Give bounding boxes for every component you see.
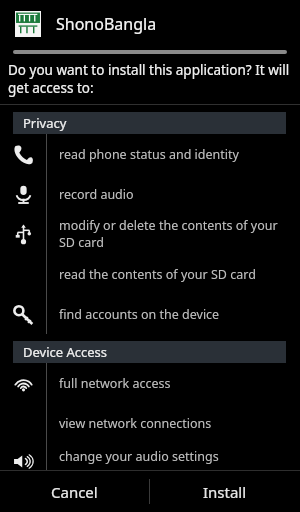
staticText: Device Access: [23, 343, 108, 361]
other: KEY: [13, 304, 34, 325]
button[interactable]: MIC: [0, 174, 300, 214]
staticText: modify or delete the contents of your SD…: [59, 217, 294, 251]
staticText: record audio: [59, 186, 134, 203]
other: PHONE: [13, 144, 34, 165]
staticText: read the contents of your SD card: [59, 266, 256, 283]
staticText: read phone status and identity: [59, 146, 239, 163]
button[interactable]: SPEAKER: [0, 443, 300, 470]
staticText: change your audio settings: [59, 448, 219, 465]
staticText: full network access: [59, 375, 171, 392]
staticText: find accounts on the device: [59, 306, 220, 323]
staticText: ShonoBangla: [56, 13, 157, 35]
other: USB: [13, 224, 34, 245]
staticText: view network connections: [59, 415, 212, 432]
button[interactable]: USB: [0, 214, 300, 294]
other: SPEAKER: [13, 453, 34, 470]
button[interactable]: WIFI: [0, 363, 300, 443]
staticText: Install: [203, 482, 247, 502]
button[interactable]: KEY: [0, 294, 300, 334]
other: WIFI: [13, 373, 34, 394]
button[interactable]: Cancel: [0, 471, 149, 512]
button[interactable]: PHONE: [0, 134, 300, 174]
other: MIC: [13, 184, 34, 205]
staticText: Cancel: [51, 482, 98, 502]
button[interactable]: Install: [150, 471, 300, 512]
staticText: Do you want to install this application?…: [8, 61, 290, 97]
staticText: Privacy: [23, 114, 67, 132]
